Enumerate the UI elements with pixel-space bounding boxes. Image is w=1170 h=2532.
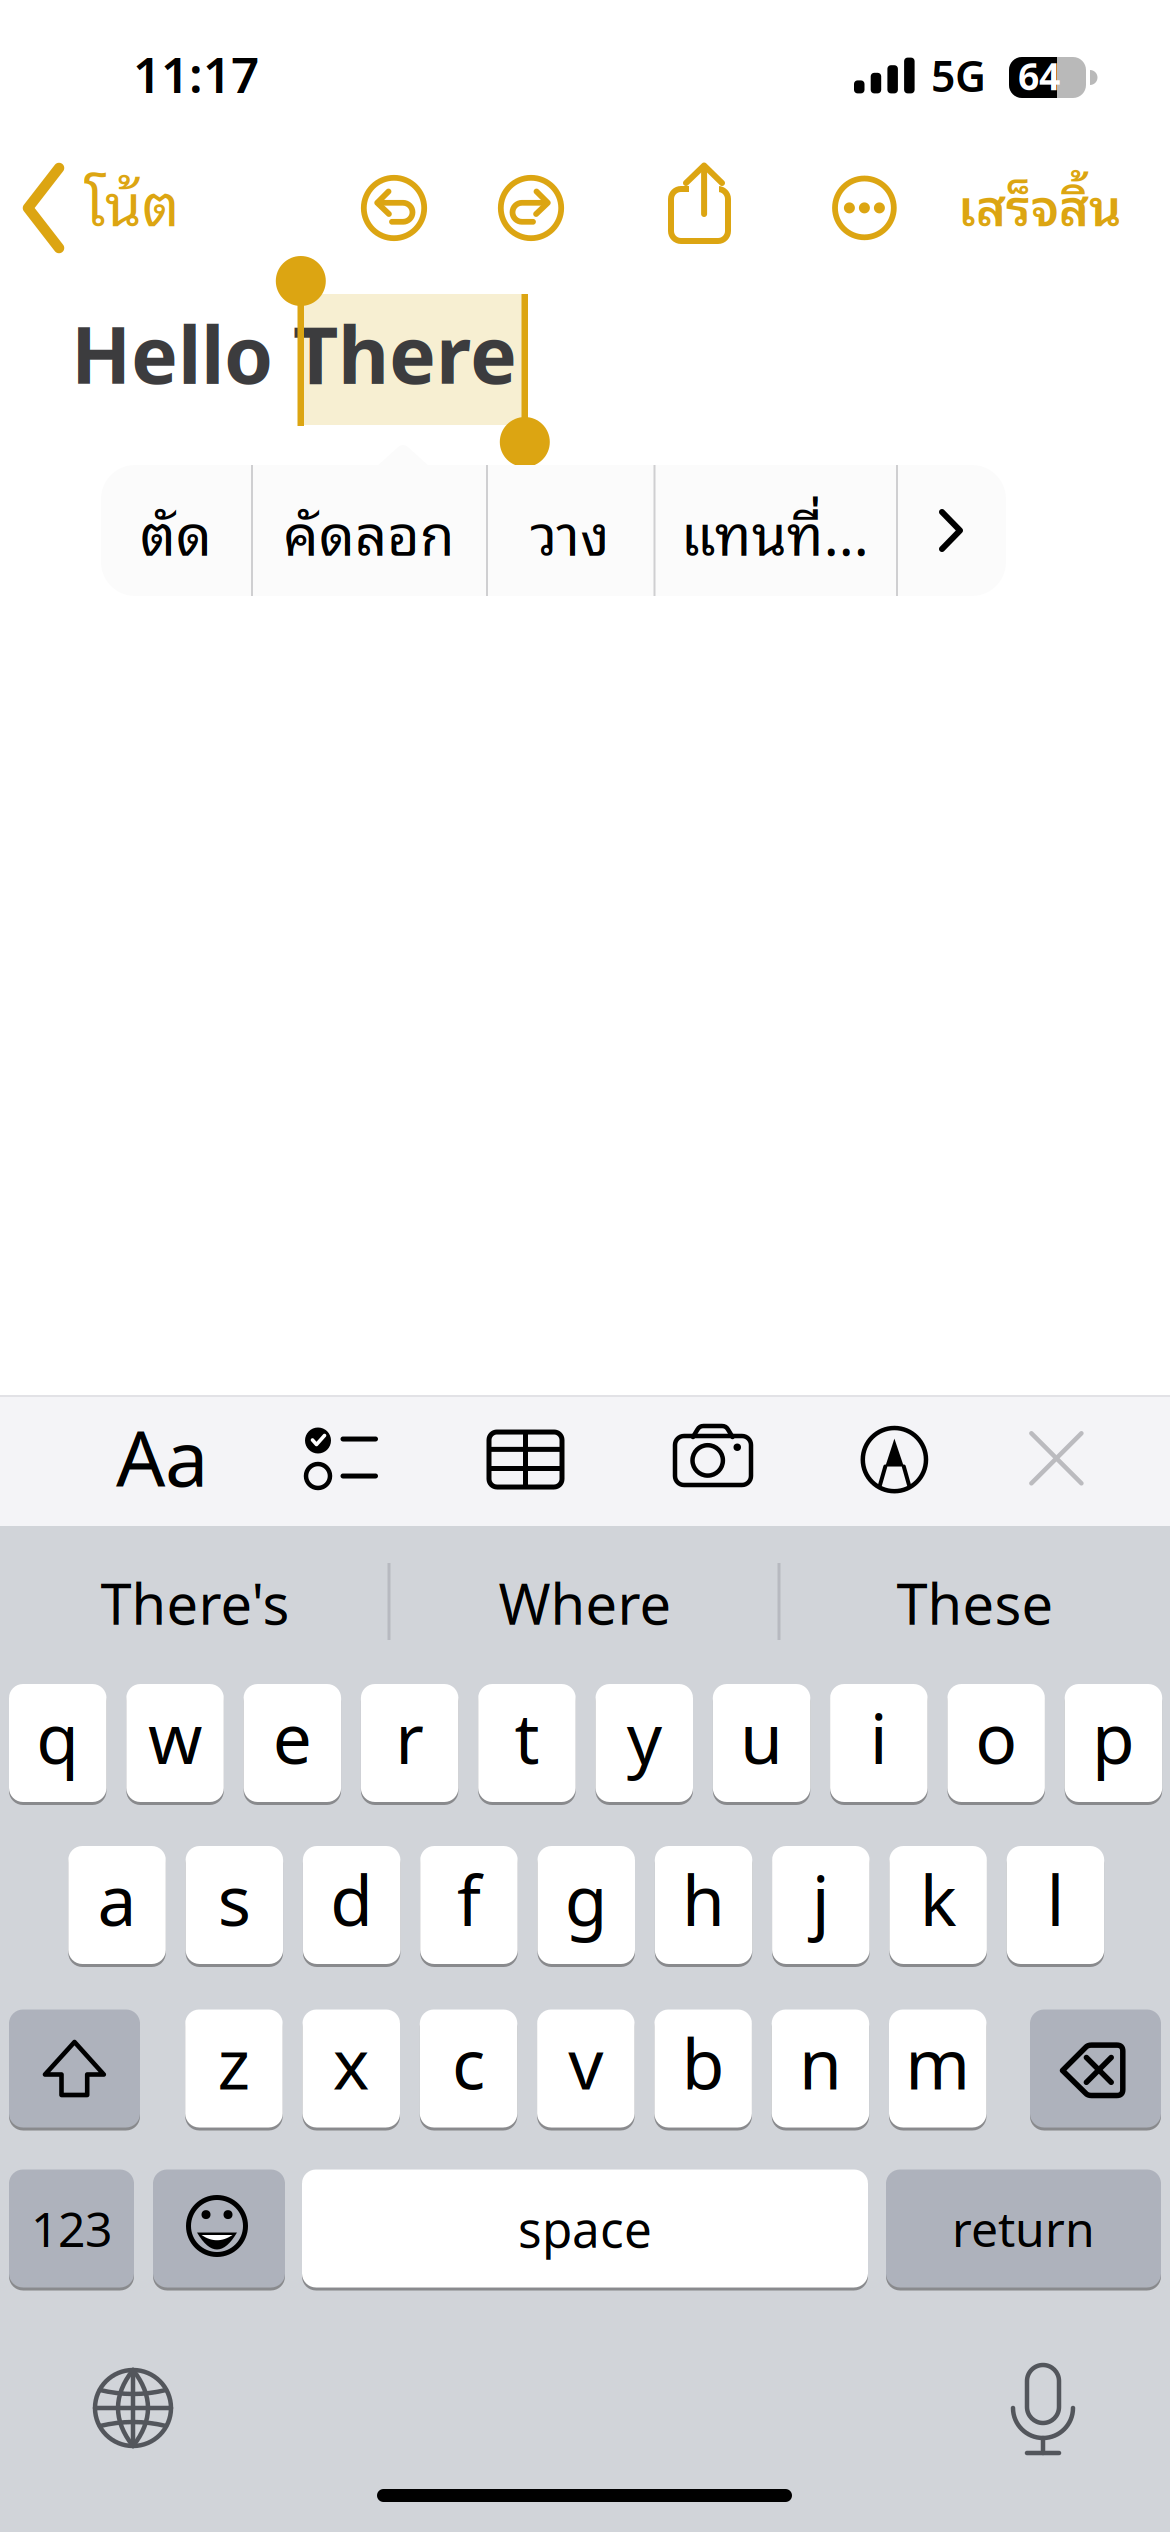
button[interactable]: r	[361, 1684, 458, 1802]
button[interactable]: o	[947, 1684, 1045, 1802]
button[interactable]: n	[772, 2009, 869, 2127]
button[interactable]: i	[830, 1684, 928, 1802]
button[interactable]	[660, 150, 740, 250]
staticText: l	[1046, 1853, 1064, 1945]
button[interactable]: u	[713, 1684, 810, 1802]
button[interactable]	[280, 1395, 410, 1526]
button[interactable]	[896, 465, 1006, 596]
button[interactable]: m	[889, 2009, 986, 2127]
button[interactable]: return	[886, 2169, 1161, 2287]
staticText: r	[395, 1691, 424, 1783]
staticText: o	[975, 1691, 1017, 1783]
button[interactable]	[462, 1395, 592, 1526]
staticText: d	[330, 1853, 373, 1945]
staticText: w	[148, 1691, 202, 1783]
button[interactable]: There's	[5, 1526, 385, 1680]
button[interactable]: z	[185, 2009, 283, 2127]
button[interactable]: y	[595, 1684, 693, 1802]
button[interactable]	[829, 1395, 959, 1526]
staticText: There's	[100, 1566, 289, 1640]
staticText: b	[682, 2016, 725, 2109]
staticText: e	[273, 1691, 312, 1783]
button[interactable]	[491, 168, 571, 248]
staticText: Where	[498, 1566, 671, 1640]
staticText: c	[452, 2016, 485, 2109]
button[interactable]	[1030, 2009, 1161, 2127]
staticText: q	[36, 1691, 79, 1783]
button[interactable]: l	[1007, 1846, 1104, 1964]
button[interactable]	[354, 168, 434, 248]
button[interactable]: a	[68, 1846, 166, 1964]
button[interactable]: p	[1065, 1684, 1162, 1802]
button[interactable]: แทนที่...	[653, 465, 896, 596]
staticText: These	[896, 1566, 1053, 1640]
staticText: Aa	[116, 1405, 208, 1508]
staticText: แทนที่...	[681, 486, 869, 575]
button[interactable]: เสร็จสิ้น	[922, 163, 1122, 263]
staticText: ตัด	[140, 486, 212, 575]
staticText: k	[920, 1853, 957, 1945]
button[interactable]	[824, 168, 904, 248]
staticText: โน้ต	[84, 153, 179, 247]
staticText: z	[217, 2016, 250, 2109]
button[interactable]	[988, 2352, 1098, 2462]
button[interactable]: w	[126, 1684, 224, 1802]
button[interactable]: คัดลอก	[251, 465, 486, 596]
button[interactable]: e	[244, 1684, 341, 1802]
staticText: s	[218, 1853, 251, 1945]
button[interactable]	[78, 2353, 188, 2463]
button[interactable]: ตัด	[101, 465, 251, 596]
staticText: v	[568, 2016, 603, 2109]
staticText: space	[518, 2196, 652, 2261]
button[interactable]: k	[889, 1846, 987, 1964]
button[interactable]: v	[537, 2009, 635, 2127]
button[interactable]: b	[654, 2009, 752, 2127]
staticText: a	[97, 1853, 136, 1945]
button[interactable]	[648, 1395, 778, 1526]
button[interactable]: Aa	[95, 1395, 225, 1526]
staticText: h	[682, 1853, 725, 1945]
button[interactable]: space	[302, 2169, 868, 2287]
button[interactable]: q	[9, 1684, 106, 1802]
button[interactable]: 123	[9, 2169, 134, 2287]
button[interactable]	[9, 2009, 140, 2127]
button[interactable]: x	[302, 2009, 400, 2127]
staticText: i	[870, 1691, 888, 1783]
staticText: 123	[31, 2197, 112, 2260]
button[interactable]: Where	[395, 1526, 775, 1680]
button[interactable]: d	[303, 1846, 400, 1964]
staticText: t	[514, 1691, 539, 1783]
staticText: วาง	[530, 486, 609, 575]
staticText: u	[740, 1691, 783, 1783]
button[interactable]	[991, 1395, 1121, 1526]
button[interactable]: s	[186, 1846, 283, 1964]
staticText: เสร็จสิ้น	[958, 163, 1122, 244]
staticText: 5G	[931, 47, 986, 104]
staticText: f	[457, 1853, 481, 1945]
button[interactable]: h	[655, 1846, 752, 1964]
button[interactable]: f	[420, 1846, 518, 1964]
staticText: คัดลอก	[283, 486, 454, 575]
staticText: n	[799, 2016, 842, 2109]
staticText: Hello There	[71, 301, 517, 405]
button[interactable]	[153, 2169, 285, 2287]
button[interactable]: t	[478, 1684, 576, 1802]
button[interactable]: โน้ต	[15, 150, 235, 266]
button[interactable]: These	[785, 1526, 1165, 1680]
button[interactable]: c	[420, 2009, 517, 2127]
staticText: return	[952, 2197, 1095, 2260]
button[interactable]: j	[772, 1846, 870, 1964]
staticText: y	[627, 1691, 662, 1783]
staticText: g	[565, 1853, 608, 1945]
staticText: j	[812, 1853, 830, 1945]
staticText: 11:17	[133, 41, 259, 106]
staticText: x	[333, 2016, 370, 2109]
button[interactable]: g	[537, 1846, 635, 1964]
staticText: m	[905, 2016, 970, 2109]
button[interactable]: วาง	[486, 465, 653, 596]
staticText: p	[1092, 1691, 1135, 1783]
staticText: 64	[1018, 51, 1060, 101]
